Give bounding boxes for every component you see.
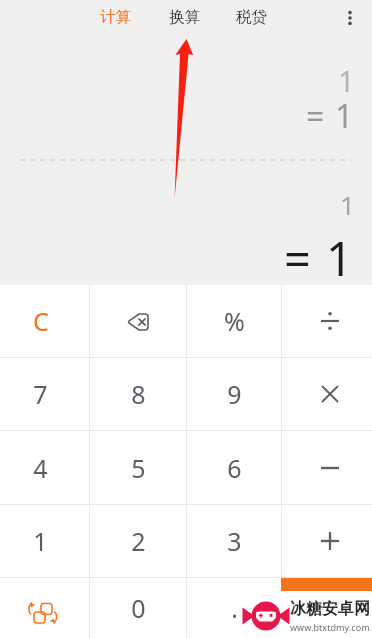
staticText: 1 xyxy=(33,524,48,558)
staticText: 9 xyxy=(227,377,242,411)
staticText: = 1 xyxy=(284,226,355,290)
button[interactable]: Plus xyxy=(282,505,372,577)
button[interactable]: 1 xyxy=(0,505,89,577)
staticText: 计算 xyxy=(100,7,131,27)
staticText: C xyxy=(33,304,49,338)
staticText: 1 xyxy=(340,187,355,222)
button[interactable]: Unit converter xyxy=(0,578,89,638)
button[interactable]: Divide xyxy=(282,285,372,357)
other: Unit converter xyxy=(28,601,58,627)
button[interactable]: 7 xyxy=(0,358,89,430)
button[interactable]: 税贷 xyxy=(235,7,268,27)
button[interactable]: 0 xyxy=(90,578,186,638)
other: Plus xyxy=(317,528,343,554)
staticText: 4 xyxy=(33,451,48,485)
staticText: 换算 xyxy=(169,7,200,27)
other: Divide xyxy=(317,308,343,334)
staticText: = 1 xyxy=(306,94,355,138)
button[interactable]: 9 xyxy=(187,358,281,430)
button[interactable]: 2 xyxy=(90,505,186,577)
button[interactable]: 6 xyxy=(187,431,281,504)
other: Backspace xyxy=(125,309,151,335)
button[interactable]: Backspace xyxy=(90,285,186,357)
staticText: 6 xyxy=(227,451,242,485)
staticText: 1 xyxy=(338,61,355,100)
button[interactable]: 换算 xyxy=(168,7,201,27)
button[interactable]: More options xyxy=(330,0,370,34)
button[interactable]: 8 xyxy=(90,358,186,430)
button[interactable]: 3 xyxy=(187,505,281,577)
staticText: 3 xyxy=(227,524,242,558)
staticText: 税贷 xyxy=(236,7,267,27)
button[interactable]: 计算 xyxy=(99,7,132,27)
button[interactable]: Multiply xyxy=(282,358,372,430)
button[interactable]: 5 xyxy=(90,431,186,504)
other: Multiply xyxy=(317,381,343,407)
button[interactable]: C xyxy=(0,285,89,357)
button[interactable]: Minus xyxy=(282,431,372,504)
staticText: 0 xyxy=(131,591,146,625)
staticText: % xyxy=(224,304,245,338)
staticText: 冰糖安卓网 xyxy=(290,599,370,619)
staticText: 5 xyxy=(131,451,146,485)
button[interactable]: = xyxy=(281,578,372,638)
staticText: www.btxtdmy.com xyxy=(290,621,370,633)
button[interactable]: 4 xyxy=(0,431,89,504)
button[interactable]: % xyxy=(187,285,281,357)
other: Minus xyxy=(317,455,343,481)
staticText: . xyxy=(231,591,238,625)
staticText: 8 xyxy=(131,377,146,411)
staticText: 2 xyxy=(131,524,146,558)
staticText: = xyxy=(318,589,335,627)
button[interactable]: . xyxy=(187,578,281,638)
staticText: 7 xyxy=(33,377,48,411)
